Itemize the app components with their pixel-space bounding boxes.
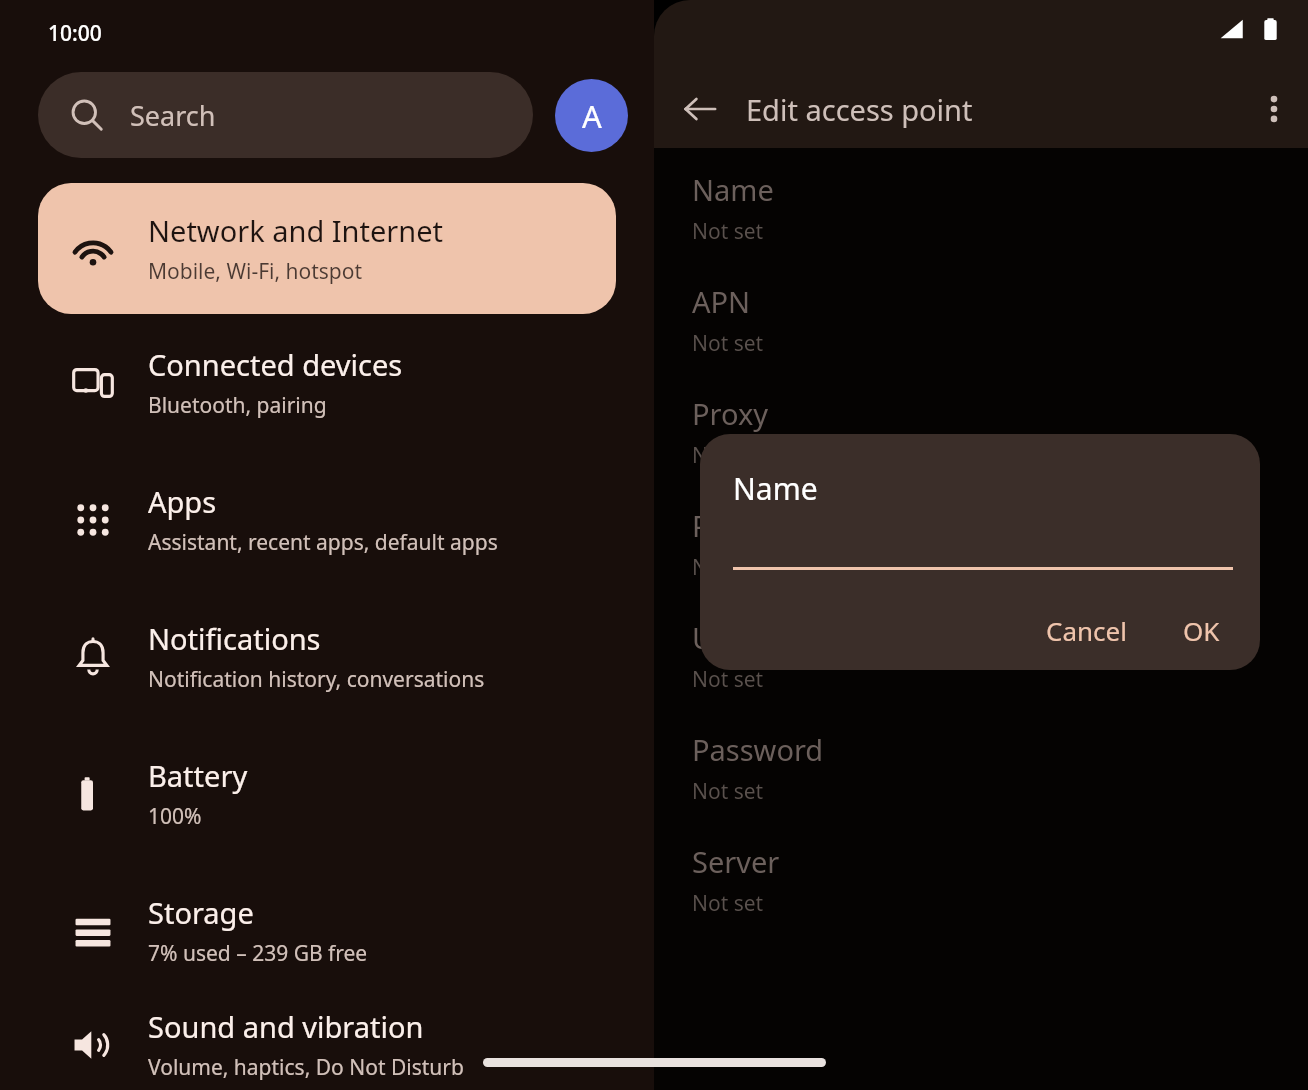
button[interactable]: Cancel <box>1024 602 1149 659</box>
button[interactable]: Connected devices <box>0 314 654 451</box>
button[interactable]: Server <box>654 820 1308 932</box>
staticText: Sound and vibration <box>148 1007 424 1046</box>
staticText: Server <box>692 842 780 881</box>
button[interactable]: Search <box>38 72 533 158</box>
staticText: Not set <box>692 441 764 470</box>
staticText: Notifications <box>148 619 321 658</box>
staticText: Notification history, conversations <box>148 665 485 694</box>
staticText: Assistant, recent apps, default apps <box>148 528 498 557</box>
button[interactable]: Password <box>654 708 1308 820</box>
staticText: Storage <box>148 893 254 932</box>
button[interactable]: APN <box>654 260 1308 372</box>
staticText: Connected devices <box>148 345 403 384</box>
staticText: Not set <box>692 329 764 358</box>
staticText: Bluetooth, pairing <box>148 391 327 420</box>
button[interactable]: Sound and vibration <box>0 999 654 1090</box>
button[interactable]: OK <box>1161 602 1242 659</box>
staticText: Volume, haptics, Do Not Disturb <box>148 1053 464 1082</box>
staticText: Username <box>692 618 834 657</box>
staticText: Password <box>692 730 824 769</box>
button[interactable]: Back <box>654 76 746 142</box>
button[interactable]: Port <box>654 484 1308 596</box>
staticText: Name <box>692 170 774 209</box>
button[interactable]: Battery <box>0 725 654 862</box>
staticText: OK <box>1183 613 1220 648</box>
staticText: Apps <box>148 482 217 521</box>
button[interactable]: Storage <box>0 862 654 999</box>
staticText: Mobile, Wi-Fi, hotspot <box>148 257 363 286</box>
staticText: Not set <box>692 889 764 918</box>
staticText: 100% <box>148 802 202 831</box>
staticText: Cancel <box>1046 613 1127 648</box>
staticText: 7% used – 239 GB free <box>148 939 368 968</box>
button[interactable]: Account <box>555 79 628 152</box>
staticText: Network and Internet <box>148 211 444 250</box>
button[interactable]: More options <box>1240 76 1308 142</box>
staticText: Not set <box>692 777 764 806</box>
staticText: APN <box>692 282 751 321</box>
staticText: Edit access point <box>746 90 973 129</box>
staticText: Search <box>130 97 216 134</box>
button[interactable]: Proxy <box>654 372 1308 484</box>
staticText: Port <box>692 506 750 545</box>
staticText: Proxy <box>692 394 769 433</box>
button[interactable]: Network and Internet <box>38 183 616 314</box>
staticText: Battery <box>148 756 248 795</box>
staticText: Not set <box>692 217 764 246</box>
staticText: 10:00 <box>48 19 102 48</box>
staticText: A <box>582 95 602 137</box>
button[interactable]: Name <box>654 148 1308 260</box>
staticText: Not set <box>692 553 764 582</box>
staticText: Not set <box>692 665 764 694</box>
button[interactable]: Notifications <box>0 588 654 725</box>
button[interactable]: Username <box>654 596 1308 708</box>
button[interactable]: Apps <box>0 451 654 588</box>
staticText: Name <box>733 468 818 509</box>
